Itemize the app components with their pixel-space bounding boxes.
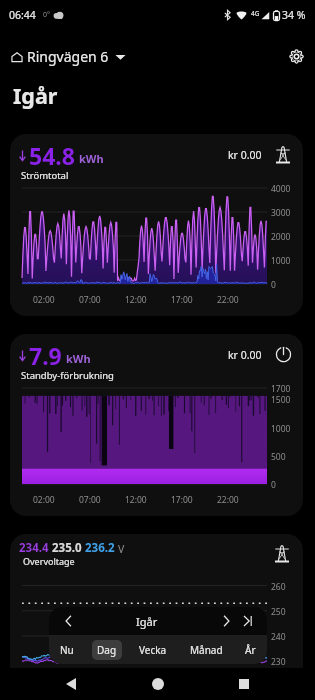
button[interactable]: Dag <box>92 640 122 660</box>
staticText: 07:00 <box>79 494 101 506</box>
staticText: 12:00 <box>125 494 147 506</box>
staticText: 07:00 <box>79 294 101 306</box>
staticText: Overvoltage <box>23 555 75 567</box>
button[interactable]: 234.4 <box>10 534 303 700</box>
staticText: Igår <box>136 614 158 629</box>
staticText: 0 <box>271 479 276 491</box>
staticText: Standby-förbrukning <box>21 369 114 382</box>
staticText: Igår <box>13 81 58 110</box>
staticText: Ringvägen 6 <box>27 47 109 66</box>
staticText: 0° <box>43 10 50 20</box>
button[interactable]: 54.8 <box>10 134 303 316</box>
staticText: 234.4 <box>19 540 49 556</box>
button[interactable]: Home <box>143 669 173 699</box>
staticText: 02:00 <box>33 494 55 506</box>
staticText: 0 <box>271 279 276 291</box>
staticText: V <box>118 542 125 556</box>
staticText: Vecka <box>139 643 167 657</box>
staticText: 34 % <box>282 8 306 22</box>
staticText: 02:00 <box>33 294 55 306</box>
staticText: kr 0.00 <box>228 348 262 362</box>
staticText: 1000 <box>271 423 291 435</box>
button[interactable]: Back <box>56 669 86 699</box>
staticText: 22:00 <box>217 494 239 506</box>
staticText: kr 0.00 <box>228 148 262 162</box>
staticText: 1700 <box>271 383 291 395</box>
staticText: 1500 <box>271 394 291 406</box>
staticText: Månad <box>190 643 223 657</box>
button[interactable]: Månad <box>185 640 228 660</box>
button[interactable]: Settings <box>283 43 309 69</box>
staticText: 4G <box>251 9 260 18</box>
staticText: 3000 <box>271 207 291 219</box>
staticText: kWh <box>66 351 91 366</box>
button[interactable]: Grid power <box>272 143 294 165</box>
button[interactable]: Nu <box>55 640 79 660</box>
button[interactable]: Recents <box>229 669 259 699</box>
button[interactable]: Standby power <box>272 343 294 365</box>
staticText: 1000 <box>271 255 291 267</box>
button[interactable]: Ringvägen 6 <box>11 44 126 69</box>
staticText: 12:00 <box>125 294 147 306</box>
staticText: 240 <box>271 631 286 643</box>
staticText: 54.8 <box>29 140 75 171</box>
staticText: 260 <box>271 581 286 593</box>
staticText: Dag <box>97 643 117 657</box>
staticText: 2000 <box>271 231 291 243</box>
button[interactable]: Vecka <box>134 640 172 660</box>
staticText: 17:00 <box>171 494 193 506</box>
button[interactable]: Voltage <box>271 542 293 564</box>
staticText: 236.2 <box>85 540 115 556</box>
button[interactable]: Previous period <box>58 611 78 631</box>
staticText: Strömtotal <box>21 169 69 182</box>
staticText: Nu <box>60 643 74 657</box>
staticText: År <box>245 643 256 657</box>
staticText: 7.9 <box>29 340 62 371</box>
staticText: 250 <box>271 606 286 618</box>
button[interactable]: Next period <box>216 611 236 631</box>
button[interactable]: Latest <box>238 611 258 631</box>
staticText: 4000 <box>271 183 291 195</box>
staticText: 22:00 <box>217 294 239 306</box>
staticText: 235.0 <box>52 540 82 556</box>
button[interactable]: 7.9 <box>10 334 303 516</box>
staticText: 230 <box>271 656 286 668</box>
staticText: 17:00 <box>171 294 193 306</box>
staticText: 500 <box>271 451 286 463</box>
staticText: kWh <box>79 151 104 166</box>
button[interactable]: År <box>240 640 261 660</box>
staticText: 06:44 <box>9 8 36 22</box>
